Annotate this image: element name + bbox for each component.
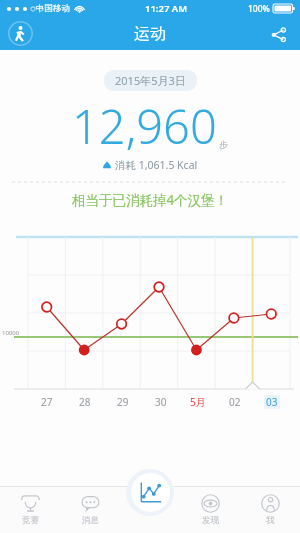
staticText: 12,960 [72,94,217,158]
staticText: 27 [41,395,53,409]
staticText: 竞赛 [22,515,39,526]
button[interactable]: Profile [8,21,33,46]
button[interactable]: 发现 [180,486,240,533]
staticText: 30 [155,395,167,409]
button[interactable]: 我 [240,486,300,533]
staticText: 29 [117,395,129,409]
staticText: 28 [79,395,91,409]
button[interactable]: Activity chart [126,469,174,516]
staticText: 02 [229,395,241,409]
staticText: 中国移动 [36,3,70,14]
staticText: 03 [266,395,278,409]
staticText: 相当于已消耗掉4个汉堡！ [0,191,300,209]
staticText: 2015年5月3日 [115,73,186,88]
staticText: 10000 [2,329,20,337]
button[interactable]: Share [266,22,290,46]
staticText: 发现 [202,515,219,526]
staticText: 消耗 1,061.5 Kcal [115,158,198,172]
staticText: 运动 [134,24,166,44]
staticText: 5月 [190,395,206,409]
staticText: 11:27 AM [145,2,188,15]
staticText: 步 [219,139,228,150]
staticText: 消息 [82,515,99,526]
button[interactable]: 竞赛 [0,486,60,533]
staticText: 100% [248,3,270,15]
button[interactable]: 消息 [60,486,120,533]
button[interactable]: 2015年5月3日 [104,70,197,91]
staticText: 我 [266,515,275,526]
